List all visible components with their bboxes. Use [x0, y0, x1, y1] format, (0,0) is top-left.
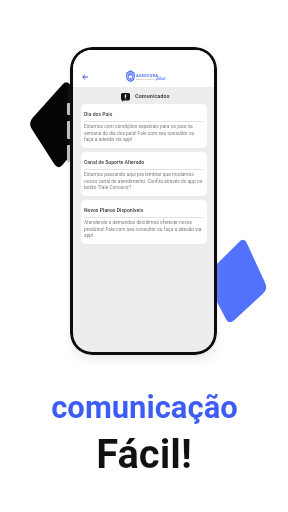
staticText: ASSECURA — [136, 73, 159, 78]
button[interactable]: Novos Planos Disponíveis — [81, 200, 207, 244]
staticText: plus — [156, 76, 166, 82]
button[interactable]: Dia dos Pais — [81, 104, 207, 148]
staticText: Atendendo a demandas decidimos oferecer … — [84, 220, 203, 238]
staticText: Dia dos Pais — [84, 111, 113, 117]
staticText: Canal de Suporte Alterado — [84, 159, 145, 165]
staticText: Estamos passando aqui pra lembrar que mu… — [84, 172, 203, 190]
button[interactable]: Canal de Suporte Alterado — [81, 152, 207, 196]
staticText: seguros & benefícios — [136, 78, 157, 80]
staticText: Estamos com condições especiais para os … — [84, 124, 203, 142]
staticText: comunicação — [51, 389, 238, 425]
staticText: Comunicados — [135, 93, 170, 100]
staticText: Fácil! — [96, 431, 192, 478]
staticText: Novos Planos Disponíveis — [84, 207, 144, 213]
button[interactable]: Back — [78, 70, 91, 83]
